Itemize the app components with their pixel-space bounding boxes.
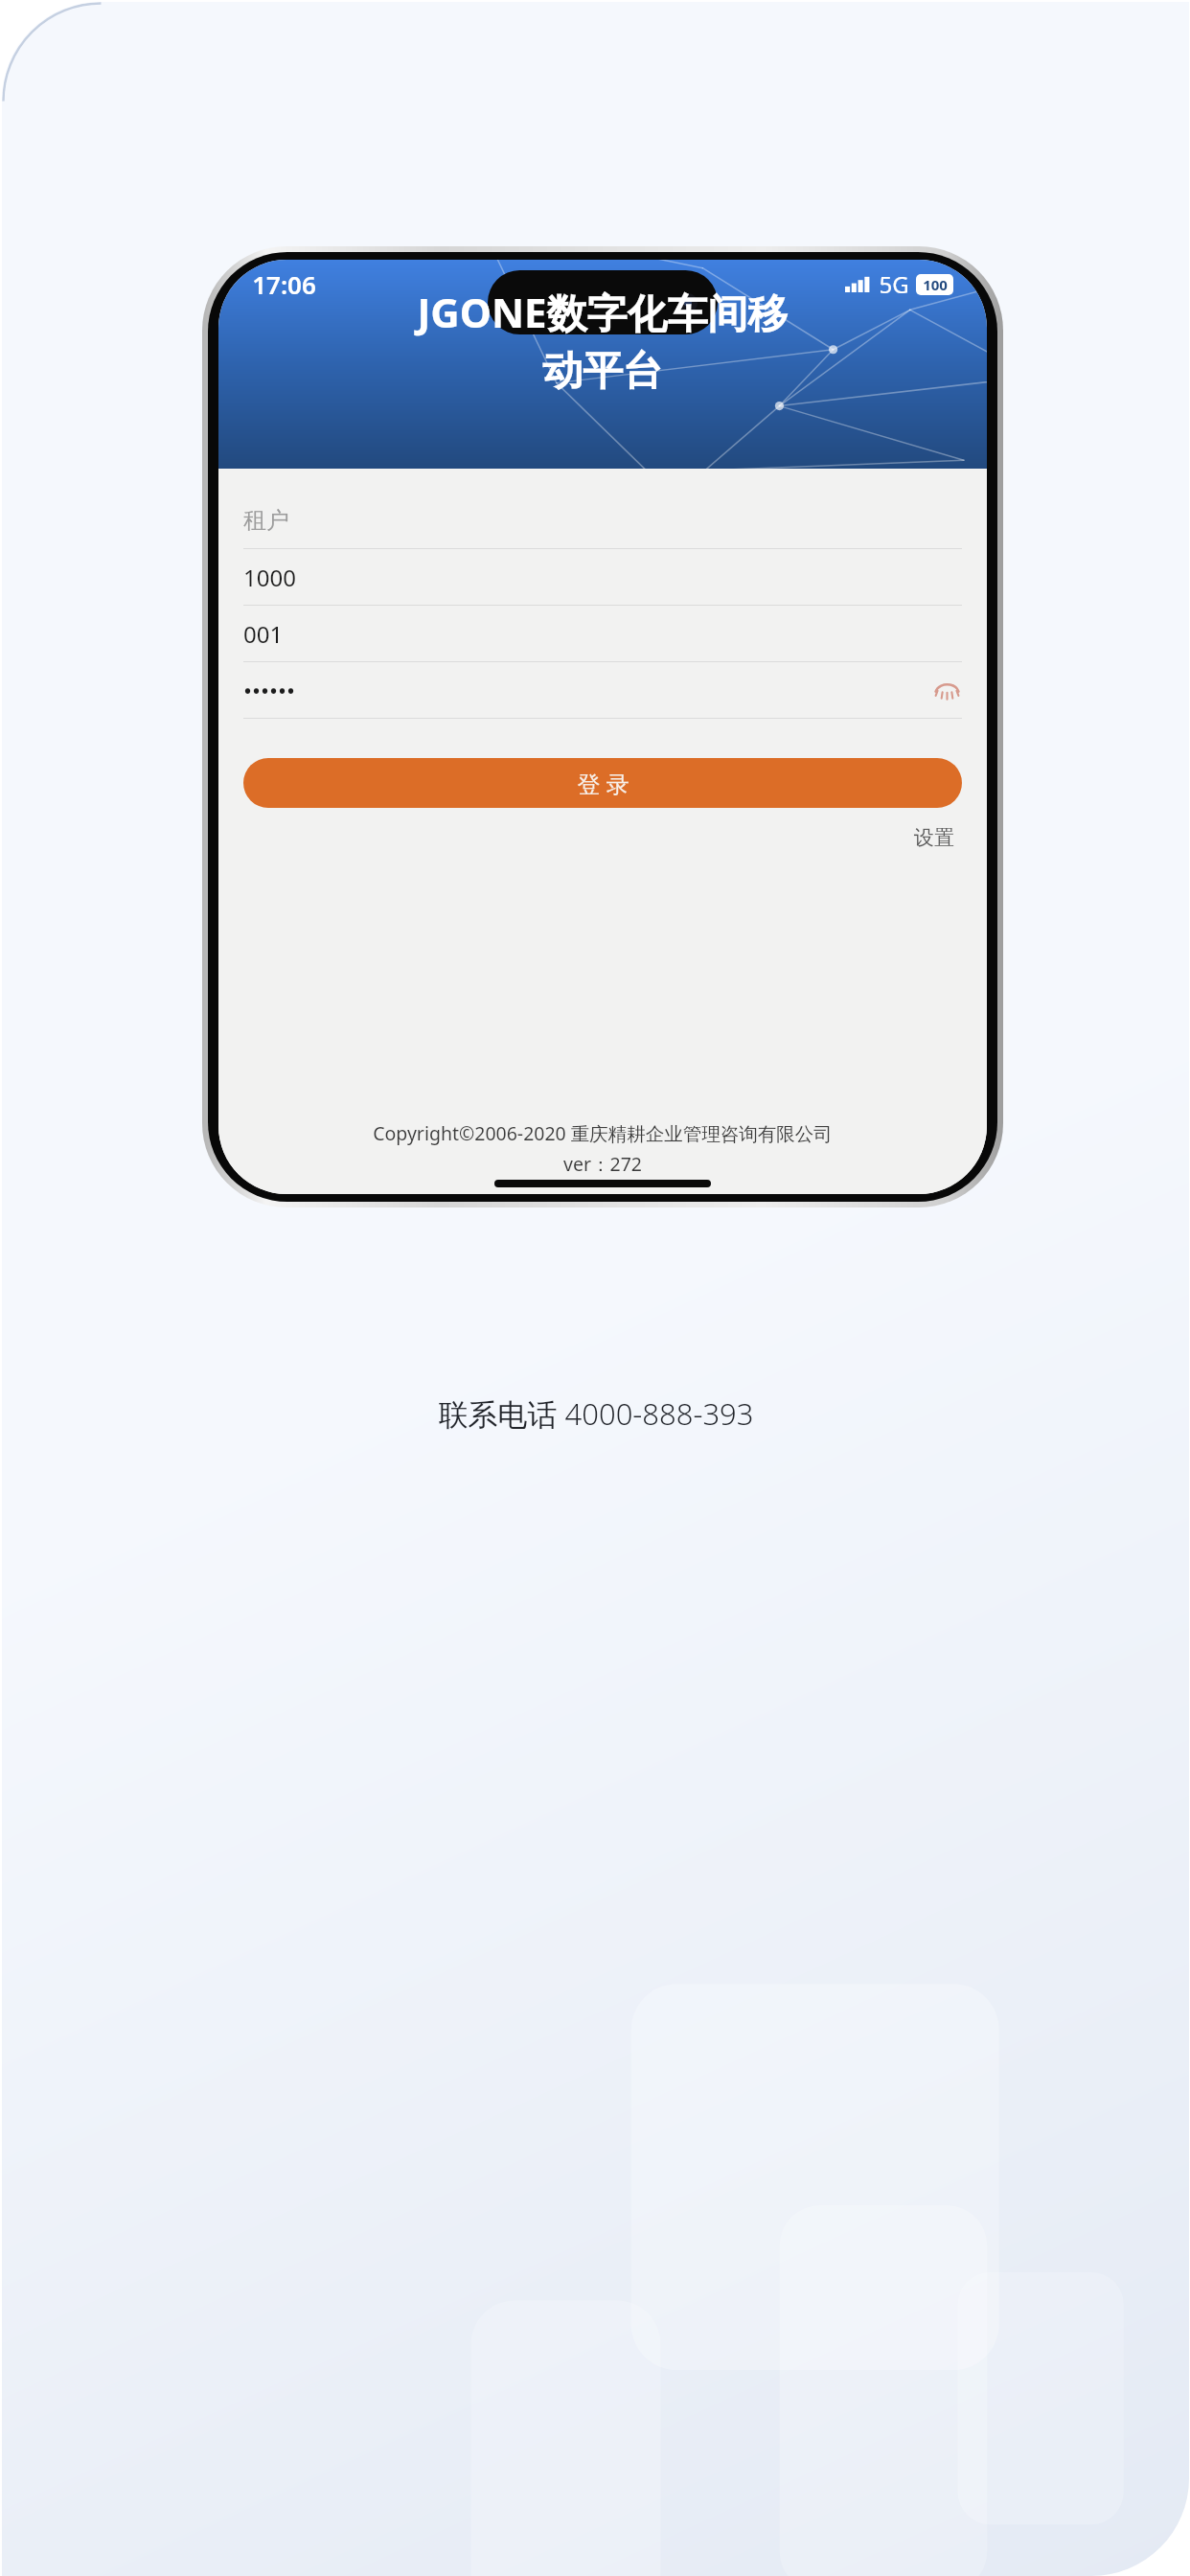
staticText: Copyright©2006-2020 重庆精耕企业管理咨询有限公司 <box>373 1120 833 1146</box>
button[interactable]: Show password <box>931 675 962 705</box>
staticText: 设置 <box>914 825 954 850</box>
button[interactable]: 设置 <box>909 822 959 853</box>
button[interactable]: 1000 <box>218 549 987 606</box>
staticText: 动平台 <box>542 346 663 397</box>
staticText: 登 录 <box>577 768 629 799</box>
button[interactable]: 租户 <box>218 493 987 549</box>
button[interactable]: •••••• <box>218 662 987 719</box>
staticText: 5G <box>879 268 909 300</box>
staticText: JGONE数字化车间移 <box>417 285 789 339</box>
staticText: 100 <box>923 275 948 294</box>
staticText: ver：272 <box>563 1151 642 1177</box>
button[interactable]: 登 录 <box>243 758 962 808</box>
staticText: 1000 <box>243 562 296 593</box>
button[interactable]: 001 <box>218 606 987 662</box>
staticText: 租户 <box>243 506 289 535</box>
staticText: 001 <box>243 618 284 650</box>
staticText: 17:06 <box>252 267 316 301</box>
staticText: •••••• <box>243 675 296 706</box>
staticText: 联系电话 4000-888-393 <box>438 1393 754 1434</box>
